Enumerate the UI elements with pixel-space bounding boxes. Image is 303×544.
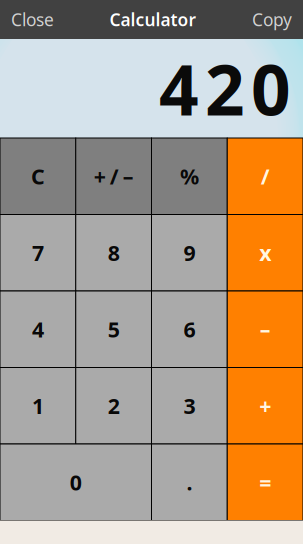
staticText: + <box>259 392 271 420</box>
staticText: C <box>31 162 45 190</box>
staticText: – <box>260 315 271 343</box>
staticText: % <box>180 162 199 190</box>
button[interactable]: 6 <box>151 291 227 367</box>
button[interactable]: C <box>0 138 76 214</box>
staticText: 7 <box>32 239 44 267</box>
button[interactable]: 9 <box>151 214 227 291</box>
button[interactable]: Close <box>0 0 62 39</box>
staticText: +/– <box>94 162 134 190</box>
staticText: x <box>259 239 271 267</box>
button[interactable]: + <box>227 367 303 444</box>
button[interactable]: % <box>151 138 227 214</box>
staticText: 8 <box>108 239 120 267</box>
button[interactable]: = <box>227 444 303 520</box>
staticText: 6 <box>183 315 195 343</box>
button[interactable]: – <box>227 291 303 367</box>
button[interactable]: 0 <box>0 444 151 520</box>
button[interactable]: x <box>227 214 303 291</box>
staticText: . <box>186 468 192 496</box>
button[interactable]: 1 <box>0 367 76 444</box>
staticText: 3 <box>183 392 195 420</box>
staticText: 9 <box>183 239 195 267</box>
staticText: / <box>261 162 270 190</box>
staticText: Copy <box>252 8 292 31</box>
button[interactable]: 7 <box>0 214 76 291</box>
button[interactable]: / <box>227 138 303 214</box>
staticText: Calculator <box>109 8 196 31</box>
button[interactable]: 5 <box>76 291 152 367</box>
button[interactable]: +/– <box>76 138 152 214</box>
button[interactable]: . <box>151 444 227 520</box>
staticText: 420 <box>159 42 291 135</box>
staticText: 4 <box>32 315 44 343</box>
staticText: 5 <box>108 315 120 343</box>
staticText: Close <box>11 8 54 31</box>
button[interactable]: 2 <box>76 367 152 444</box>
button[interactable]: Copy <box>244 0 303 39</box>
staticText: 1 <box>32 392 44 420</box>
button[interactable]: 4 <box>0 291 76 367</box>
button[interactable]: 8 <box>76 214 152 291</box>
button[interactable]: 3 <box>151 367 227 444</box>
staticText: 0 <box>70 468 82 496</box>
staticText: = <box>259 468 271 496</box>
staticText: 2 <box>108 392 120 420</box>
